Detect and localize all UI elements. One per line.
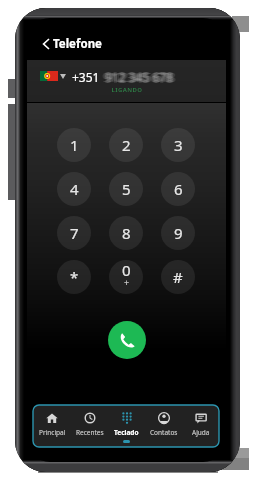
staticText: 1: [70, 135, 79, 155]
staticText: +351: [72, 69, 100, 85]
staticText: 912 345 678: [104, 69, 173, 85]
button[interactable]: 5: [109, 172, 143, 206]
button[interactable]: Ligar: [108, 321, 146, 359]
button[interactable]: 6: [161, 172, 195, 206]
staticText: 3: [174, 135, 183, 155]
button[interactable]: 7: [57, 216, 91, 250]
staticText: 912 345 678: [108, 69, 177, 85]
button[interactable]: Recentes: [71, 405, 108, 447]
button[interactable]: 4: [57, 172, 91, 206]
button[interactable]: Teclado: [108, 405, 145, 447]
button[interactable]: 0: [109, 260, 143, 294]
staticText: 9: [174, 223, 183, 243]
staticText: #: [173, 267, 183, 287]
staticText: 912 345 678: [106, 69, 175, 85]
staticText: +: [124, 276, 130, 288]
button[interactable]: 3: [161, 128, 195, 162]
staticText: Ajuda: [192, 428, 210, 437]
staticText: 912 345 678: [106, 68, 175, 84]
staticText: 912 345 678: [106, 70, 175, 86]
staticText: 912 345 678: [105, 69, 174, 85]
staticText: 912 345 678: [102, 69, 171, 85]
button[interactable]: Voltar: [33, 31, 59, 57]
staticText: 5: [122, 179, 131, 199]
staticText: Contatos: [150, 428, 178, 437]
staticText: 912 345 678: [104, 70, 173, 86]
button[interactable]: 2: [109, 128, 143, 162]
staticText: 8: [122, 223, 131, 243]
staticText: Principal: [39, 428, 66, 437]
button[interactable]: 8: [109, 216, 143, 250]
staticText: 4: [70, 179, 79, 199]
staticText: Telefone: [53, 36, 102, 52]
staticText: 912 345 678: [104, 68, 173, 84]
button[interactable]: 9: [161, 216, 195, 250]
button[interactable]: 1: [57, 128, 91, 162]
staticText: 2: [122, 135, 131, 155]
button[interactable]: #: [161, 260, 195, 294]
staticText: 912 345 678: [103, 69, 172, 85]
staticText: Teclado: [114, 428, 139, 437]
staticText: 7: [70, 223, 79, 243]
staticText: 0: [122, 260, 131, 280]
button[interactable]: Principal: [33, 405, 71, 447]
button[interactable]: Ajuda: [182, 405, 219, 447]
staticText: LIGANDO: [111, 86, 143, 94]
staticText: Recentes: [76, 428, 104, 437]
staticText: 912 345 678: [107, 69, 176, 85]
button[interactable]: *: [57, 260, 91, 294]
staticText: 6: [174, 179, 183, 199]
staticText: 912 345 678: [105, 70, 174, 86]
button[interactable]: Contatos: [145, 405, 182, 447]
staticText: *: [70, 267, 79, 287]
staticText: 912 345 678: [105, 68, 174, 84]
